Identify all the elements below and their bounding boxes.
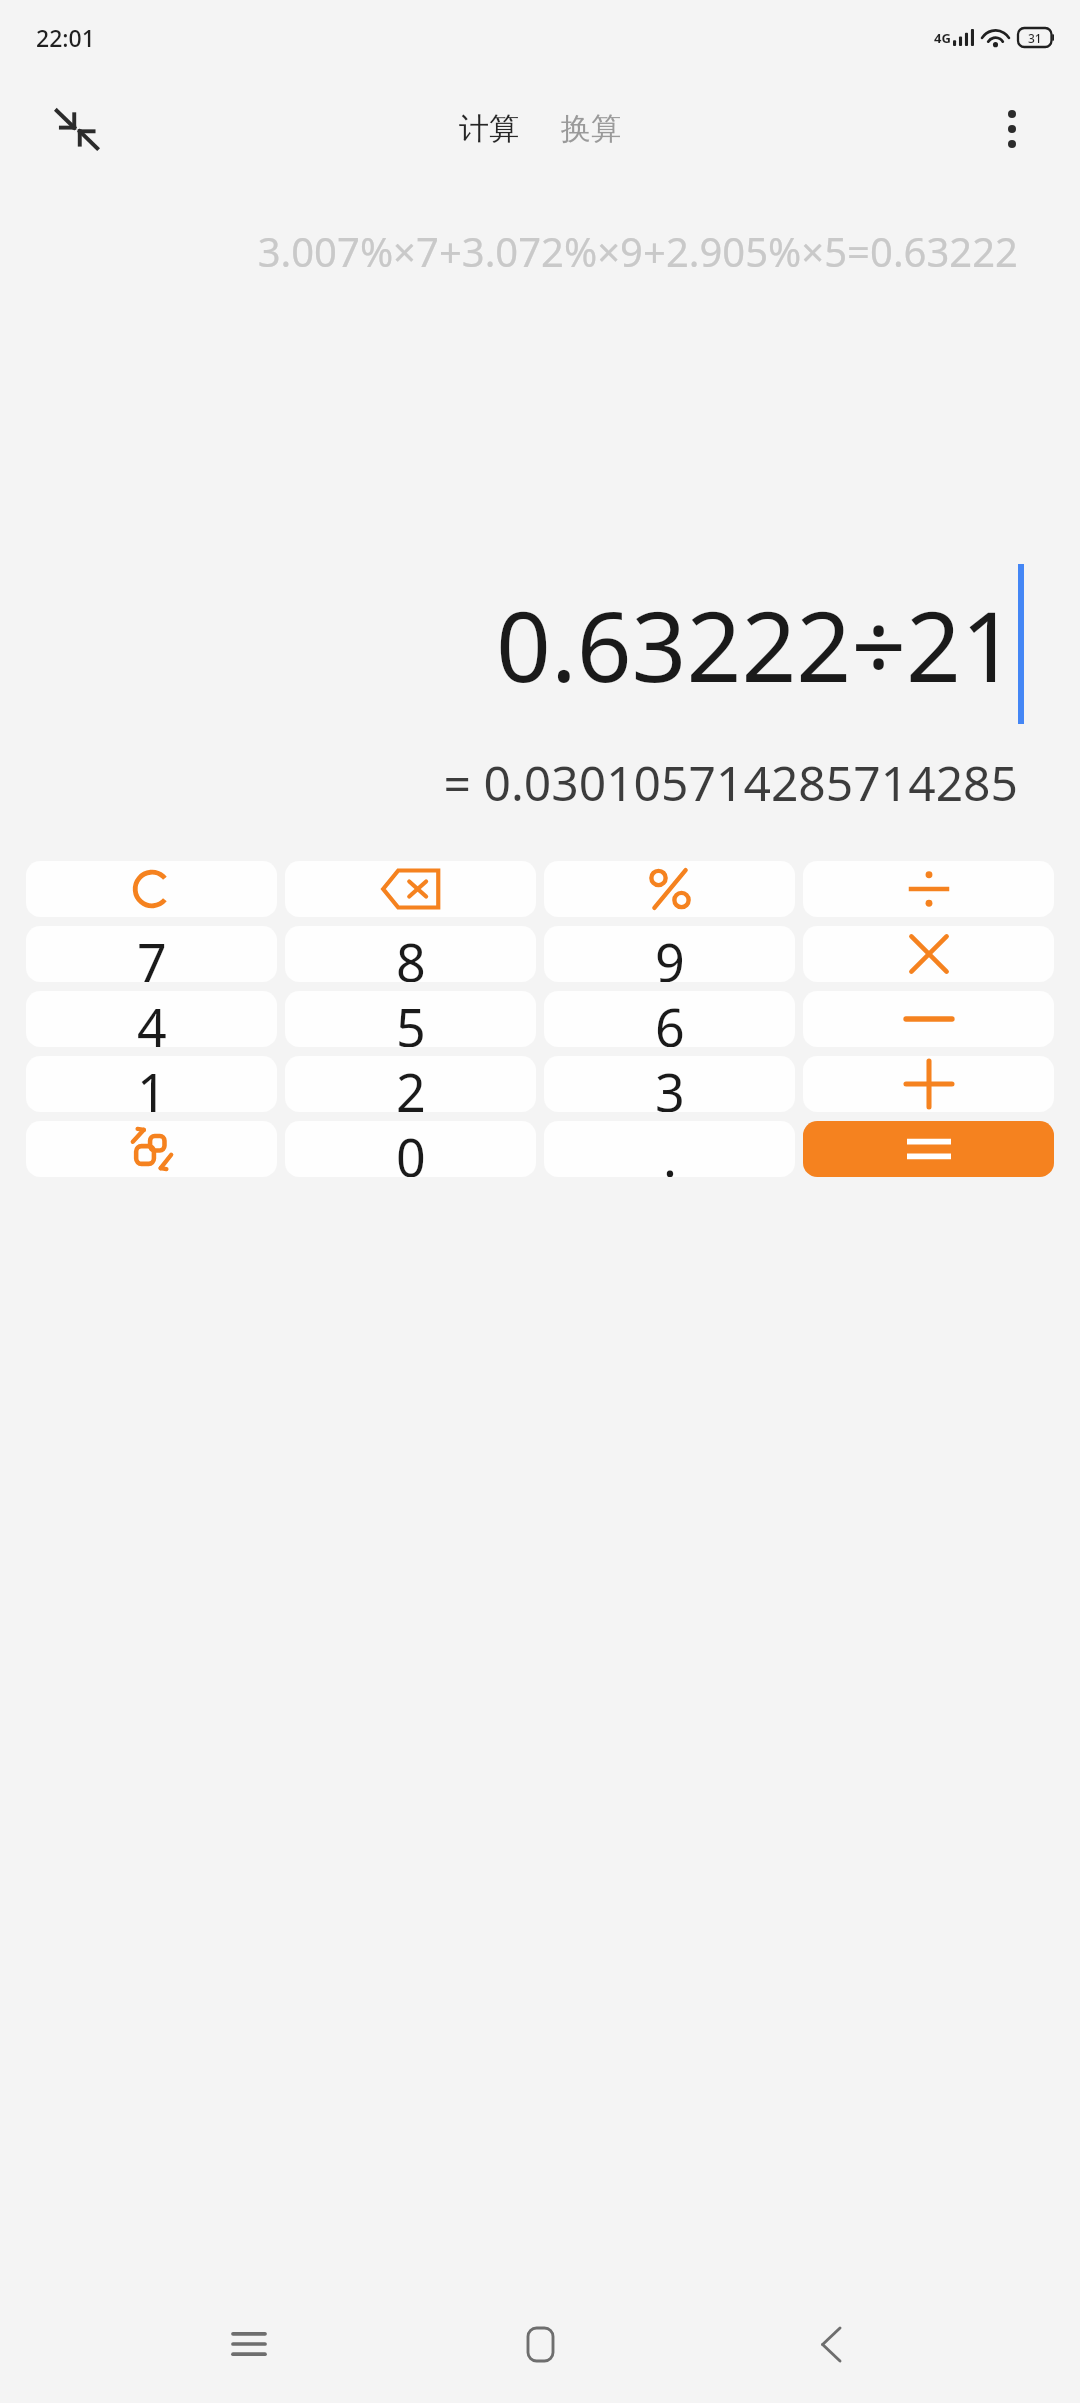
button[interactable] bbox=[26, 861, 277, 917]
button[interactable]: 2 bbox=[285, 1056, 536, 1112]
button[interactable]: 4 bbox=[26, 991, 277, 1047]
button[interactable]: Plus bbox=[803, 1056, 1054, 1112]
staticText: 3.007%×7+3.072%×9+2.905%×5=0.63222 bbox=[60, 224, 1018, 278]
button[interactable]: 9 bbox=[544, 926, 795, 982]
button[interactable]: Recent apps bbox=[207, 2302, 291, 2386]
button[interactable]: Collapse bbox=[46, 98, 108, 160]
button[interactable]: Backspace bbox=[285, 861, 536, 917]
staticText: 6 bbox=[655, 991, 685, 1047]
button[interactable]: 7 bbox=[26, 926, 277, 982]
button[interactable]: 计算 bbox=[451, 104, 527, 154]
button[interactable]: Minus bbox=[803, 991, 1054, 1047]
button[interactable]: Percent bbox=[544, 861, 795, 917]
button[interactable]: Multiply bbox=[803, 926, 1054, 982]
button[interactable]: Scientific mode bbox=[26, 1121, 277, 1177]
staticText: 31 bbox=[1028, 30, 1042, 46]
staticText: 9 bbox=[655, 926, 685, 982]
button[interactable]: Back bbox=[789, 2302, 873, 2386]
staticText: 7 bbox=[137, 926, 167, 982]
staticText: = 0.030105714285714285 bbox=[0, 750, 1018, 815]
button[interactable]: 3 bbox=[544, 1056, 795, 1112]
button[interactable]: 5 bbox=[285, 991, 536, 1047]
button[interactable]: Home bbox=[498, 2302, 582, 2386]
staticText: . bbox=[663, 1121, 677, 1177]
staticText: 4 bbox=[137, 991, 167, 1047]
button[interactable]: 1 bbox=[26, 1056, 277, 1112]
button[interactable]: 0 bbox=[285, 1121, 536, 1177]
staticText: 0 bbox=[396, 1121, 426, 1177]
button[interactable]: 换算 bbox=[553, 104, 629, 154]
staticText: 0.63222÷21 bbox=[496, 579, 1016, 710]
staticText: 8 bbox=[396, 926, 426, 982]
staticText: 2 bbox=[396, 1056, 426, 1112]
staticText: 4G bbox=[934, 29, 951, 47]
staticText: 3 bbox=[655, 1056, 685, 1112]
button[interactable]: Equals bbox=[803, 1121, 1054, 1177]
staticText: 1 bbox=[137, 1056, 167, 1112]
staticText: 5 bbox=[396, 991, 426, 1047]
button[interactable]: Divide bbox=[803, 861, 1054, 917]
button[interactable]: 8 bbox=[285, 926, 536, 982]
staticText: 计算 bbox=[459, 110, 519, 148]
button[interactable]: . bbox=[544, 1121, 795, 1177]
staticText: 换算 bbox=[561, 110, 621, 148]
staticText: 22:01 bbox=[36, 22, 95, 53]
button[interactable]: More options bbox=[982, 99, 1042, 159]
button[interactable]: 6 bbox=[544, 991, 795, 1047]
